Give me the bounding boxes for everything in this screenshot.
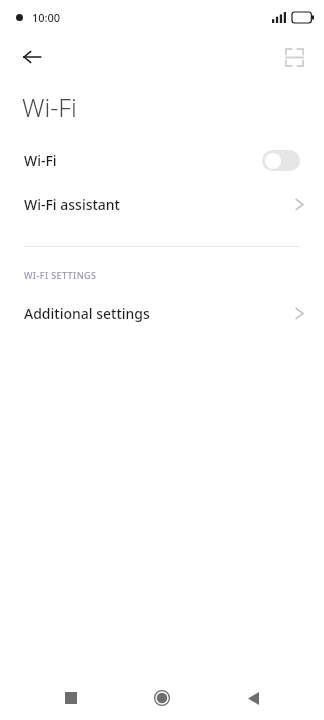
button[interactable]: Back [12,37,52,77]
staticText: Wi-Fi [24,151,262,170]
button[interactable]: Back [233,678,273,718]
staticText: WI-FI SETTINGS [24,269,97,281]
staticText: Wi-Fi assistant [24,195,295,214]
button[interactable]: Wi-Fi toggle, off [262,150,300,171]
staticText: 10:00 [32,10,61,25]
button[interactable]: Recents [51,678,91,718]
button[interactable]: Wi-Fi assistant [0,182,324,226]
button[interactable]: Additional settings [0,293,324,333]
button[interactable]: Scan QR code [274,37,314,77]
staticText: Wi-Fi [22,90,77,124]
button[interactable]: Home [142,678,182,718]
button[interactable]: Wi-Fi [0,138,324,182]
staticText: Additional settings [24,304,295,323]
